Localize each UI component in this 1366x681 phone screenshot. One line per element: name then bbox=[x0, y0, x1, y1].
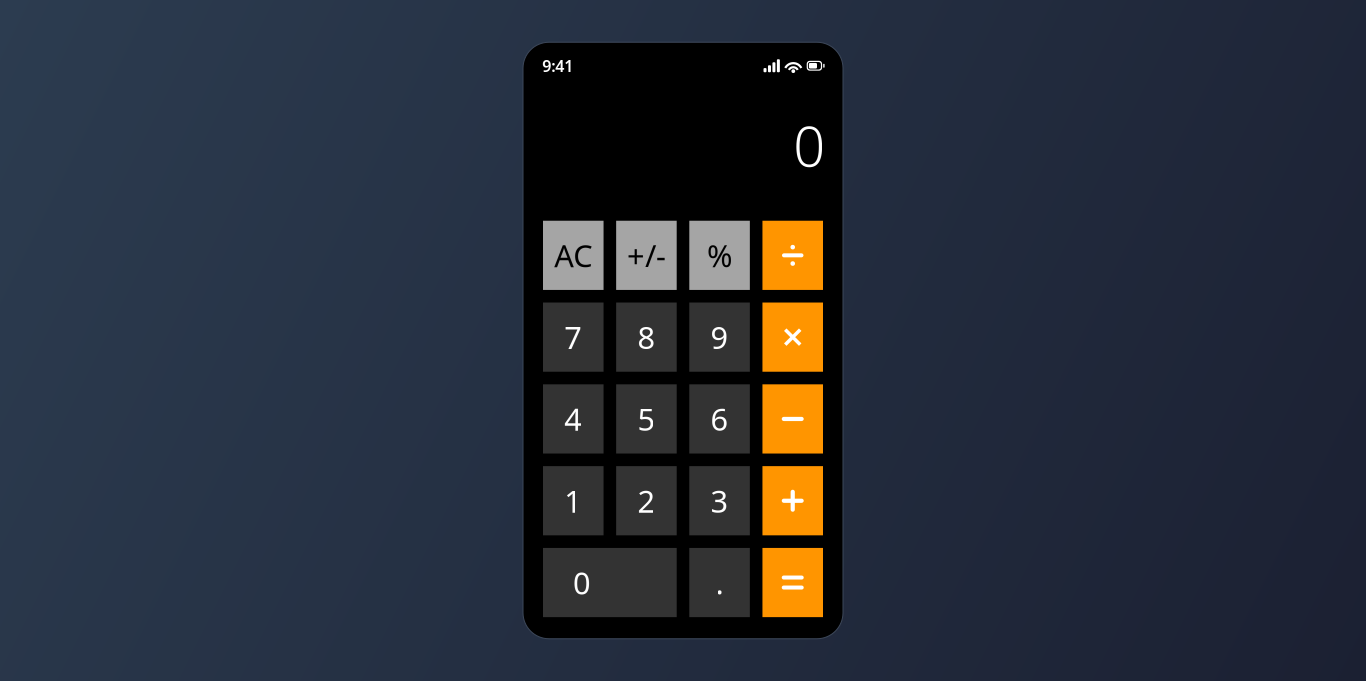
button[interactable]: Subtract bbox=[762, 384, 823, 454]
staticText: 9:41 bbox=[542, 55, 573, 76]
button[interactable]: Equals bbox=[762, 548, 823, 617]
staticText: 7 bbox=[564, 317, 582, 357]
button[interactable]: 1 bbox=[543, 466, 603, 535]
staticText: . bbox=[716, 562, 724, 603]
button[interactable]: Divide bbox=[762, 221, 823, 290]
button[interactable]: Multiply bbox=[762, 303, 823, 372]
staticText: 5 bbox=[637, 399, 655, 439]
button[interactable]: AC bbox=[543, 221, 603, 290]
button[interactable]: 5 bbox=[616, 384, 677, 454]
staticText: AC bbox=[554, 235, 592, 276]
button[interactable]: 9 bbox=[689, 303, 750, 372]
staticText: 3 bbox=[711, 480, 729, 521]
button[interactable]: 0 bbox=[543, 548, 677, 617]
button[interactable]: . bbox=[689, 548, 750, 617]
staticText: 9 bbox=[711, 317, 729, 357]
button[interactable]: 3 bbox=[689, 466, 750, 535]
button[interactable]: 6 bbox=[689, 384, 750, 454]
staticText: % bbox=[707, 235, 732, 276]
staticText: 6 bbox=[711, 399, 729, 439]
staticText: 8 bbox=[637, 317, 655, 357]
staticText: 4 bbox=[564, 399, 582, 439]
staticText: 1 bbox=[564, 480, 582, 521]
staticText: 2 bbox=[637, 480, 655, 521]
button[interactable]: Add bbox=[762, 466, 823, 535]
button[interactable]: % bbox=[689, 221, 750, 290]
button[interactable]: 2 bbox=[616, 466, 677, 535]
button[interactable]: 4 bbox=[543, 384, 603, 454]
staticText: +/- bbox=[627, 235, 666, 276]
button[interactable]: 8 bbox=[616, 303, 677, 372]
staticText: 0 bbox=[793, 108, 825, 182]
button[interactable]: +/- bbox=[616, 221, 677, 290]
button[interactable]: 7 bbox=[543, 303, 603, 372]
staticText: 0 bbox=[573, 562, 591, 603]
